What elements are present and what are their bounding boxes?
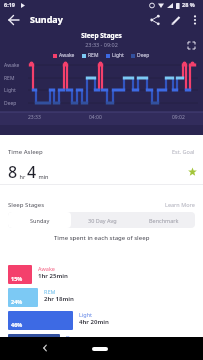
staticText: Benchmark: [149, 217, 179, 224]
staticText: Time Asleep: [8, 148, 43, 156]
button[interactable]: [169, 13, 183, 27]
staticText: 15%: [11, 275, 23, 282]
staticText: 28 %: [182, 1, 195, 8]
button[interactable]: [188, 13, 202, 27]
staticText: Deep: [66, 334, 80, 341]
staticText: Light: [112, 52, 124, 59]
staticText: 09:02: [172, 114, 185, 121]
button[interactable]: 30 Day Avg: [71, 212, 133, 228]
staticText: REM: [88, 52, 99, 59]
staticText: 2hr 18min: [44, 295, 74, 303]
staticText: hr: [18, 173, 27, 180]
staticText: Est. Goal: [172, 148, 195, 155]
button[interactable]: [6, 12, 22, 28]
button[interactable]: 15%: [8, 334, 93, 353]
button[interactable]: [148, 13, 162, 27]
button[interactable]: [38, 341, 52, 355]
button[interactable]: 46%: [8, 311, 109, 330]
staticText: 30 Day Avg: [88, 217, 117, 224]
staticText: 1hr 1min: [66, 341, 93, 349]
staticText: 46%: [11, 321, 23, 328]
button[interactable]: Benchmark: [133, 212, 195, 228]
staticText: Sleep Stages: [8, 201, 45, 209]
button[interactable]: 15%: [8, 265, 68, 284]
staticText: 04:00: [89, 114, 102, 121]
staticText: 8: [8, 161, 18, 183]
staticText: Time spent in each stage of sleep: [54, 234, 150, 242]
staticText: Light: [4, 87, 16, 94]
staticText: Sunday: [30, 13, 63, 25]
staticText: 24%: [11, 298, 23, 305]
staticText: Deep: [4, 100, 17, 107]
staticText: Sunday: [30, 217, 50, 224]
button[interactable]: Sunday: [8, 212, 71, 228]
staticText: Awake: [4, 62, 20, 69]
button[interactable]: [92, 347, 108, 351]
staticText: 23:33: [28, 114, 41, 121]
button[interactable]: 24%: [8, 288, 74, 307]
button[interactable]: Learn More: [165, 201, 195, 208]
staticText: 23:33 - 09:02: [85, 41, 118, 48]
button[interactable]: [186, 40, 197, 51]
staticText: 4hr 20min: [79, 318, 109, 326]
staticText: Awake: [38, 265, 55, 272]
staticText: Light: [79, 311, 93, 318]
staticText: min: [37, 173, 49, 180]
staticText: Sleep Stages: [81, 31, 122, 40]
staticText: Deep: [137, 52, 150, 59]
staticText: 4: [27, 161, 37, 183]
staticText: REM: [44, 288, 56, 295]
staticText: 1hr 25min: [38, 272, 68, 280]
staticText: Awake: [59, 52, 75, 59]
staticText: REM: [4, 75, 15, 82]
staticText: 6:19: [4, 1, 15, 8]
